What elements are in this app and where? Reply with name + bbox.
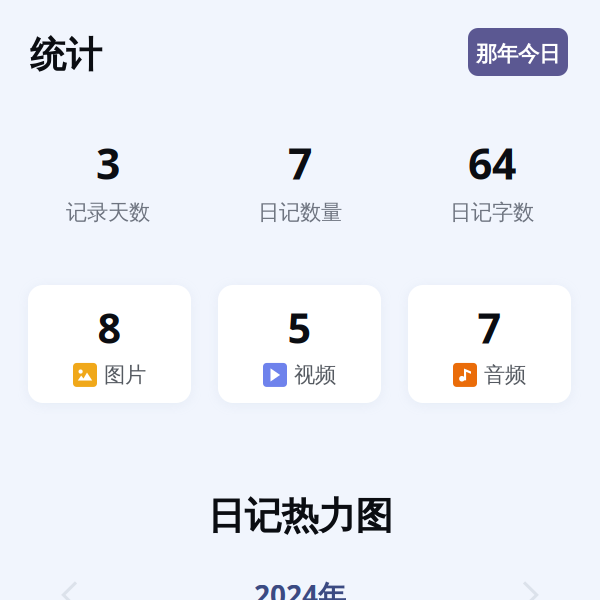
- staticText: 8: [97, 300, 121, 355]
- button[interactable]: 上一年: [47, 573, 91, 600]
- staticText: 7: [477, 300, 501, 355]
- staticText: 日记字数: [450, 199, 534, 225]
- staticText: 3: [96, 135, 120, 191]
- staticText: 记录天数: [66, 199, 150, 225]
- staticText: 64: [468, 135, 516, 191]
- staticText: 图片: [104, 362, 146, 388]
- staticText: 音频: [484, 362, 526, 388]
- button[interactable]: 5: [218, 285, 381, 403]
- staticText: 视频: [294, 362, 336, 388]
- button[interactable]: 7: [408, 285, 571, 403]
- button[interactable]: 下一年: [509, 573, 553, 600]
- staticText: 5: [287, 300, 311, 355]
- staticText: 日记热力图: [207, 493, 392, 539]
- staticText: 7: [288, 135, 312, 191]
- button[interactable]: 8: [28, 285, 191, 403]
- staticText: 那年今日: [476, 41, 560, 67]
- staticText: 2024年: [254, 576, 346, 600]
- staticText: 统计: [30, 33, 102, 77]
- staticText: 日记数量: [258, 199, 342, 225]
- button[interactable]: 那年今日: [468, 28, 568, 76]
